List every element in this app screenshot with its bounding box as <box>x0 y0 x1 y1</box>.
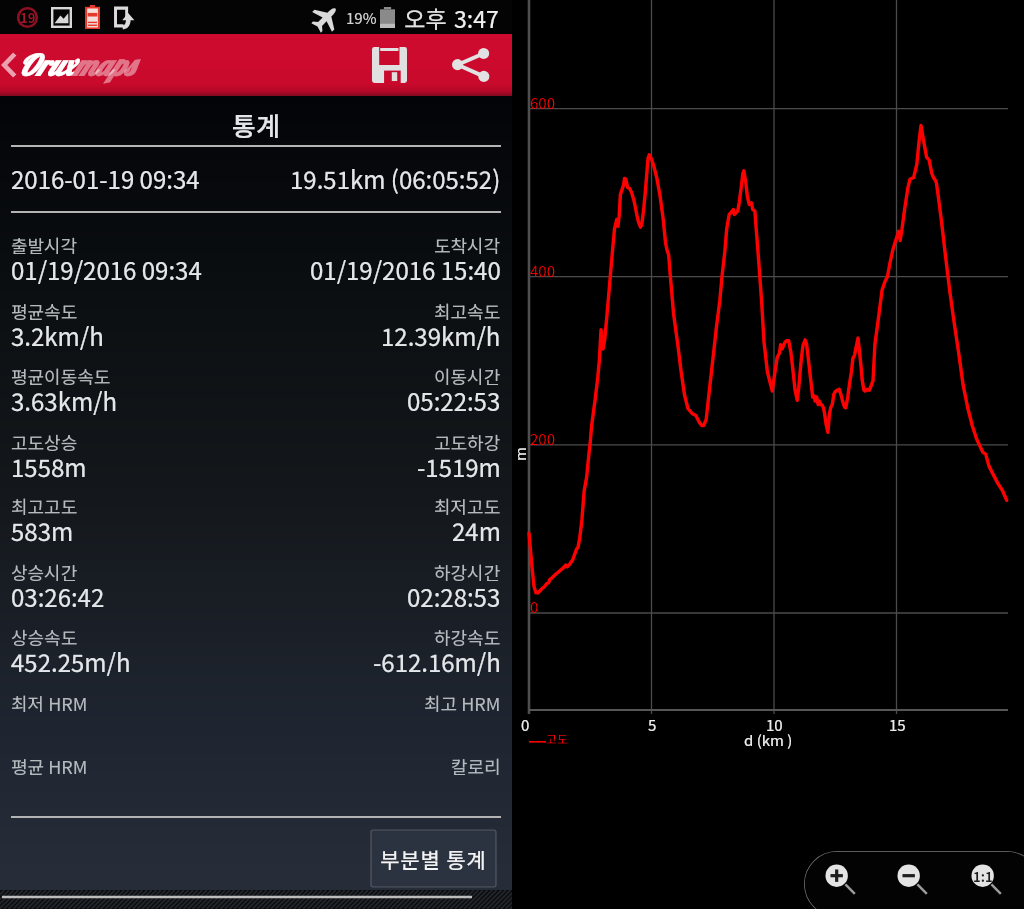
staticText: 19 <box>20 8 36 27</box>
staticText: 600 <box>530 92 555 114</box>
button[interactable] <box>0 687 512 747</box>
staticText: -612.16m/h <box>373 644 501 676</box>
staticText: 부분별 통계 <box>380 844 487 874</box>
button[interactable]: Reset zoom <box>962 855 1006 899</box>
button[interactable] <box>0 556 512 616</box>
staticText: maps <box>73 47 133 83</box>
staticText: 3.2km/h <box>11 318 104 350</box>
staticText: 583m <box>11 513 74 545</box>
button[interactable] <box>0 750 512 810</box>
staticText: 출발시각 <box>11 232 78 258</box>
staticText: 칼로리 <box>451 753 501 779</box>
staticText: 통계 <box>232 106 280 144</box>
staticText: 24m <box>452 513 501 545</box>
staticText: 최저고도 <box>434 493 501 519</box>
staticText: 1:1 <box>973 867 993 886</box>
staticText: 최저 HRM <box>11 690 88 716</box>
button[interactable]: 2016-01-19 09:34 <box>0 156 512 200</box>
button[interactable]: Orux <box>3 34 133 96</box>
staticText: Orux <box>17 47 73 83</box>
staticText: 03:26:42 <box>11 579 105 611</box>
staticText: 01/19/2016 15:40 <box>310 252 501 284</box>
staticText: 최고 HRM <box>424 690 501 716</box>
staticText: 평균속도 <box>11 298 78 324</box>
staticText: 고도상승 <box>11 429 78 455</box>
staticText: 상승속도 <box>11 624 78 650</box>
staticText: 평균 HRM <box>11 753 88 779</box>
staticText: 하강시간 <box>434 559 501 585</box>
button[interactable] <box>0 295 512 355</box>
staticText: 3.63km/h <box>11 383 118 415</box>
staticText: m <box>509 447 531 461</box>
staticText: 01/19/2016 09:34 <box>11 252 202 284</box>
staticText: 고도 <box>546 730 569 747</box>
staticText: 이동시간 <box>434 363 501 389</box>
staticText: 평균이동속도 <box>11 363 111 389</box>
staticText: 452.25m/h <box>11 644 131 676</box>
staticText: 5 <box>648 714 657 736</box>
staticText: 오후 <box>404 1 447 34</box>
button[interactable] <box>0 426 512 486</box>
staticText: 고도하강 <box>434 429 501 455</box>
staticText: 하강속도 <box>434 624 501 650</box>
staticText: 10 <box>766 714 783 736</box>
staticText: 0 <box>530 596 539 618</box>
staticText: -1519m <box>417 449 501 481</box>
staticText: 02:28:53 <box>407 579 501 611</box>
staticText: 15 <box>889 714 906 736</box>
button[interactable]: Zoom out <box>888 855 932 899</box>
staticText: 도착시각 <box>434 232 501 258</box>
button[interactable] <box>0 621 512 681</box>
button[interactable]: Save <box>350 34 428 96</box>
staticText: 19.51km (06:05:52) <box>290 161 501 196</box>
button[interactable]: 부분별 통계 <box>371 830 496 887</box>
staticText: 400 <box>530 260 555 282</box>
staticText: 200 <box>530 428 555 450</box>
staticText: 19% <box>346 7 377 29</box>
staticText: 1558m <box>11 449 87 481</box>
button[interactable] <box>0 229 512 289</box>
staticText: 상승시간 <box>11 559 78 585</box>
staticText: 2016-01-19 09:34 <box>11 161 200 196</box>
staticText: 최고고도 <box>11 493 78 519</box>
staticText: 최고속도 <box>434 298 501 324</box>
staticText: 3:47 <box>454 1 499 34</box>
button[interactable]: Share <box>428 34 512 96</box>
button[interactable] <box>0 490 512 550</box>
staticText: 0 <box>521 714 530 736</box>
staticText: 05:22:53 <box>407 383 501 415</box>
button[interactable]: Zoom in <box>816 855 860 899</box>
staticText: 12.39km/h <box>381 318 501 350</box>
staticText: d (km ) <box>744 729 793 751</box>
button[interactable] <box>0 360 512 420</box>
